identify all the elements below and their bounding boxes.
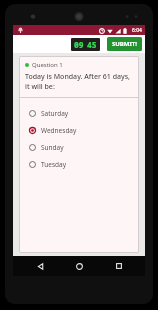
staticText: 6:04	[132, 27, 142, 34]
button[interactable]: Home	[66, 256, 92, 276]
button[interactable]: Sunday	[19, 139, 139, 156]
button[interactable]: Wednesday	[19, 122, 139, 139]
staticText: Wednesday	[41, 126, 77, 135]
staticText: Sunday	[41, 143, 64, 152]
staticText: SUBMIT!	[112, 40, 137, 48]
button[interactable]: Saturday	[19, 105, 139, 122]
button[interactable]: Recent apps	[106, 256, 132, 276]
staticText: Tuesday	[41, 160, 67, 169]
staticText: Today is Monday. After 61 days, it will …	[25, 72, 134, 92]
button[interactable]: Back	[27, 256, 53, 276]
staticText: 09	[74, 39, 84, 50]
button[interactable]: SUBMIT!	[107, 37, 142, 51]
button[interactable]: Tuesday	[19, 156, 139, 173]
staticText: 45	[87, 39, 97, 50]
staticText: Saturday	[41, 109, 69, 118]
staticText: Question 1	[32, 61, 63, 69]
